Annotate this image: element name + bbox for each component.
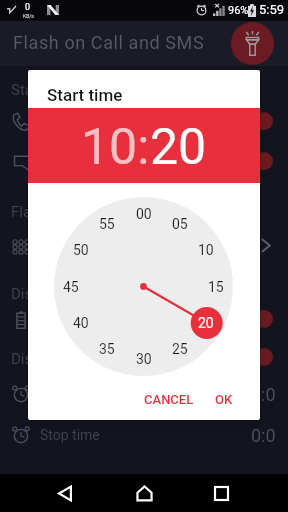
staticText: 50 xyxy=(73,242,89,258)
staticText: 10: xyxy=(81,118,150,177)
button[interactable]: 45 xyxy=(57,277,85,297)
staticText: Disable on low battery xyxy=(40,312,178,328)
button[interactable]: CANCEL xyxy=(138,384,200,415)
button[interactable]: 05 xyxy=(166,214,194,234)
button[interactable]: 25 xyxy=(166,339,194,359)
button[interactable]: Flash on SMS xyxy=(0,140,288,182)
staticText: Flash on Call and SMS xyxy=(13,32,205,53)
staticText: 5:59 xyxy=(259,2,285,17)
staticText: 55 xyxy=(99,216,115,232)
button[interactable]: Back xyxy=(45,474,85,512)
staticText: 05 xyxy=(172,216,188,232)
button[interactable]: 50 xyxy=(67,240,95,260)
staticText: Start xyxy=(11,81,44,99)
staticText: Stop time xyxy=(40,427,100,443)
staticText: OK xyxy=(215,392,233,407)
staticText: 0 xyxy=(25,2,31,13)
button[interactable]: Disable on low battery xyxy=(0,298,288,340)
staticText: 0:0 xyxy=(251,384,276,405)
staticText: Flash on SMS xyxy=(40,154,126,170)
button[interactable]: 20 xyxy=(192,313,220,333)
button[interactable]: Flash on Call xyxy=(0,100,288,142)
staticText: 10 xyxy=(198,242,214,258)
staticText: 15 xyxy=(208,279,224,295)
button[interactable]: 30 xyxy=(130,349,158,369)
staticText: 0:0 xyxy=(251,425,276,446)
button[interactable]: Home xyxy=(124,474,164,512)
button[interactable]: 10 xyxy=(192,240,220,260)
button[interactable]: OK xyxy=(209,384,239,415)
button[interactable]: Stop time xyxy=(0,413,288,455)
staticText: Start time xyxy=(47,85,123,105)
staticText: CANCEL xyxy=(144,392,194,407)
button[interactable]: Flash pattern xyxy=(0,225,288,267)
staticText: Flash on Call xyxy=(40,114,120,130)
button[interactable]: 15 xyxy=(202,277,230,297)
staticText: Disable xyxy=(11,350,61,368)
staticText: 20 xyxy=(150,118,207,177)
staticText: Flash pattern xyxy=(40,239,122,255)
staticText: Disable xyxy=(11,285,61,303)
staticText: Flash xyxy=(11,203,48,221)
staticText: 35 xyxy=(99,341,115,357)
staticText: 00 xyxy=(136,206,152,222)
staticText: 96% xyxy=(228,4,249,17)
button[interactable]: Recent apps xyxy=(201,474,241,512)
button[interactable]: Toggle torch xyxy=(231,22,274,65)
staticText: KB/s xyxy=(23,13,34,19)
staticText: 20 xyxy=(198,315,214,331)
staticText: 40 xyxy=(73,315,89,331)
button[interactable]: 00 xyxy=(130,204,158,224)
button[interactable]: 35 xyxy=(93,339,121,359)
button[interactable]: 40 xyxy=(67,313,95,333)
button[interactable]: 55 xyxy=(93,214,121,234)
staticText: 45 xyxy=(63,279,79,295)
staticText: 30 xyxy=(136,351,152,367)
button[interactable]: Start time xyxy=(0,372,288,414)
staticText: 25 xyxy=(172,341,188,357)
